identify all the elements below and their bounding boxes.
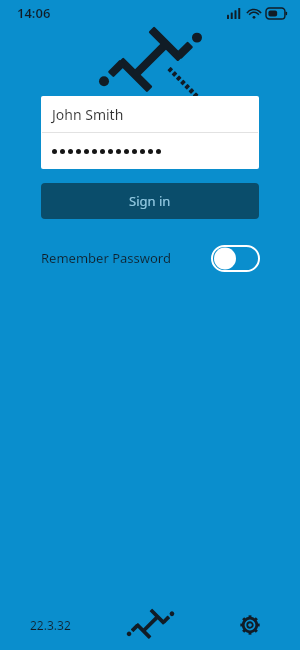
staticText: Remember Password: [41, 249, 171, 267]
button[interactable]: 22.3.32: [0, 600, 100, 650]
button[interactable]: John Smith: [41, 96, 259, 132]
button[interactable]: Sign in: [41, 183, 259, 219]
staticText: 14:06: [17, 4, 51, 22]
staticText: John Smith: [52, 105, 124, 124]
button[interactable]: Home: [100, 600, 200, 650]
other: Remember Password toggle: [212, 246, 259, 271]
staticText: 22.3.32: [30, 617, 71, 633]
staticText: Sign in: [129, 192, 171, 210]
button[interactable]: Settings: [200, 600, 300, 650]
button[interactable]: Remember Password: [41, 241, 259, 275]
button[interactable]: [41, 133, 259, 169]
